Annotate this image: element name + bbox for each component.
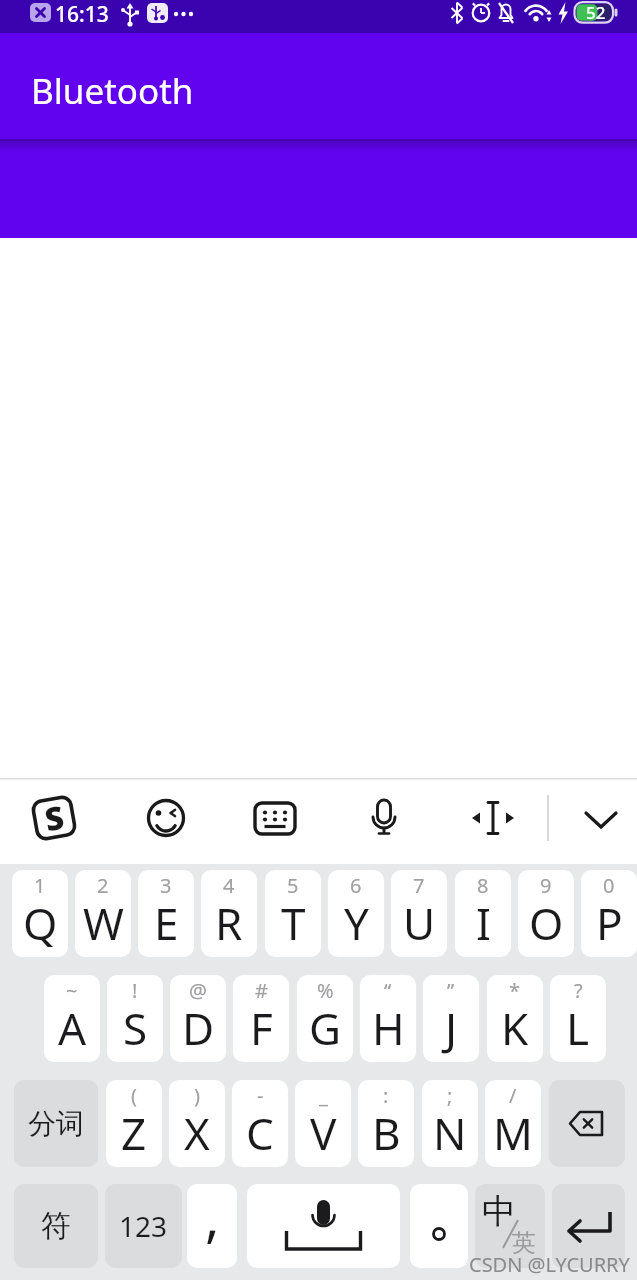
staticText: T [281, 893, 306, 953]
staticText: S [41, 795, 68, 841]
staticText: - [257, 1082, 264, 1109]
button[interactable] [469, 794, 517, 842]
staticText: 0 [603, 872, 615, 899]
button[interactable] [410, 1184, 468, 1268]
button[interactable]: 分词 [14, 1080, 98, 1167]
button[interactable] [549, 1080, 625, 1167]
button[interactable]: ( [106, 1080, 162, 1167]
button[interactable]: ! [107, 975, 163, 1062]
button[interactable] [142, 794, 190, 842]
button[interactable]: - [232, 1080, 288, 1167]
button[interactable]: 2 [75, 870, 131, 957]
button[interactable]: 中 [475, 1184, 545, 1268]
staticText: 符 [41, 1207, 71, 1245]
button[interactable]: S [28, 792, 79, 843]
button[interactable] [247, 1184, 400, 1268]
staticText: 7 [413, 872, 425, 899]
staticText: CSDN @LYCURRY [469, 1251, 630, 1278]
button[interactable]: @ [170, 975, 226, 1062]
staticText: U [403, 893, 436, 953]
staticText: ” [447, 977, 455, 1004]
staticText: P [596, 893, 623, 953]
staticText: 9 [540, 872, 552, 899]
staticText: 6 [350, 872, 362, 899]
button[interactable]: ; [422, 1080, 478, 1167]
staticText: ( [131, 1082, 137, 1109]
staticText: ) [194, 1082, 200, 1109]
staticText: “ [384, 977, 392, 1004]
staticText: S [123, 998, 148, 1058]
staticText: / [509, 1082, 517, 1109]
button[interactable] [251, 794, 299, 842]
staticText: D [182, 998, 215, 1058]
staticText: ? [574, 977, 583, 1004]
staticText: * [509, 977, 521, 1004]
button[interactable]: ? [550, 975, 606, 1062]
staticText: 1 [34, 872, 46, 899]
staticText: : [383, 1082, 389, 1109]
button[interactable]: % [297, 975, 353, 1062]
button[interactable]: ) [169, 1080, 225, 1167]
staticText: 3 [160, 872, 172, 899]
button[interactable]: 4 [201, 870, 257, 957]
button[interactable] [577, 794, 625, 842]
staticText: Z [121, 1103, 147, 1163]
button[interactable]: 3 [138, 870, 194, 957]
staticText: L [566, 998, 590, 1058]
staticText: 中 [482, 1190, 516, 1233]
button[interactable]: ~ [44, 975, 100, 1062]
staticText: ~ [66, 977, 78, 1004]
button[interactable] [552, 1184, 625, 1268]
staticText: I [476, 893, 491, 953]
staticText: _ [319, 1082, 328, 1109]
staticText: J [445, 998, 458, 1058]
button[interactable]: ” [423, 975, 479, 1062]
staticText: 52 [586, 1, 606, 24]
staticText: 分词 [28, 1106, 84, 1141]
staticText: ! [132, 977, 138, 1004]
button[interactable]: / [485, 1080, 541, 1167]
staticText: X [184, 1103, 210, 1163]
staticText: F [250, 998, 273, 1058]
staticText: 123 [119, 1207, 168, 1245]
staticText: 8 [477, 872, 489, 899]
staticText: N [433, 1103, 467, 1163]
button[interactable]: 0 [581, 870, 637, 957]
button[interactable] [360, 794, 408, 842]
button[interactable]: , [187, 1184, 237, 1268]
staticText: M [493, 1103, 533, 1163]
staticText: Bluetooth [31, 67, 194, 115]
staticText: 英 [512, 1228, 536, 1258]
staticText: C [246, 1103, 274, 1163]
button[interactable]: 123 [105, 1184, 182, 1268]
button[interactable]: 9 [518, 870, 574, 957]
staticText: H [372, 998, 405, 1058]
staticText: 5 [287, 872, 299, 899]
staticText: W [83, 893, 124, 953]
staticText: G [309, 998, 342, 1058]
staticText: O [529, 893, 564, 953]
button[interactable]: * [487, 975, 543, 1062]
staticText: 16:13 [55, 0, 109, 29]
staticText: R [215, 893, 243, 953]
button[interactable]: 8 [455, 870, 511, 957]
staticText: 4 [223, 872, 235, 899]
staticText: # [255, 977, 268, 1004]
button[interactable]: 7 [391, 870, 447, 957]
staticText: Y [344, 893, 369, 953]
staticText: K [501, 998, 529, 1058]
staticText: @ [189, 977, 207, 1004]
staticText: A [58, 998, 87, 1058]
button[interactable]: 5 [265, 870, 321, 957]
button[interactable]: “ [360, 975, 416, 1062]
staticText: ; [447, 1082, 453, 1109]
staticText: 2 [97, 872, 109, 899]
button[interactable]: # [233, 975, 289, 1062]
button[interactable]: : [358, 1080, 414, 1167]
button[interactable]: 6 [328, 870, 384, 957]
staticText: , [205, 1184, 220, 1253]
button[interactable]: 符 [14, 1184, 98, 1268]
button[interactable]: 1 [12, 870, 68, 957]
button[interactable]: _ [295, 1080, 351, 1167]
staticText: % [317, 977, 334, 1004]
